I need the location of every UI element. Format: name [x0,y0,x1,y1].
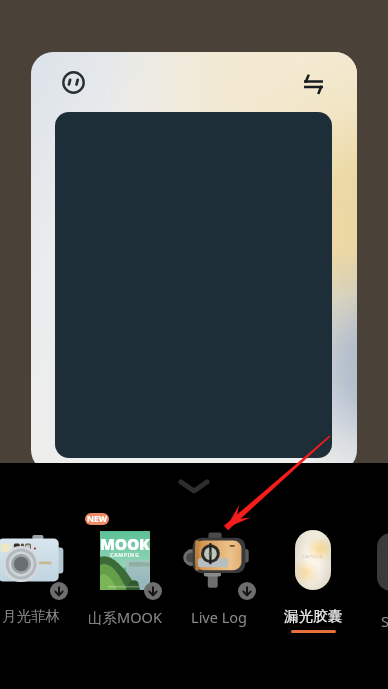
staticText: MOOK [100,533,150,554]
staticText: CAMPING [110,551,140,558]
staticText: 山系MOOK [88,607,162,627]
staticText: CAPSULE [302,554,324,559]
staticText: 漏光胶囊 [284,607,342,625]
staticText: Spectra [381,611,388,631]
button[interactable]: Info [52,61,94,103]
staticText: 月光菲林 [2,607,60,625]
button[interactable]: MOOK [78,521,172,636]
button[interactable]: 月光菲林 [0,521,78,636]
button[interactable]: Collapse [170,471,218,503]
button[interactable]: Spectra [377,531,388,659]
staticText: Live Log [191,607,247,627]
button[interactable]: Live Log [172,521,266,636]
staticText: NEW [87,513,107,525]
button[interactable]: CAPSULE [266,521,360,636]
button[interactable]: Switch camera [292,62,334,104]
